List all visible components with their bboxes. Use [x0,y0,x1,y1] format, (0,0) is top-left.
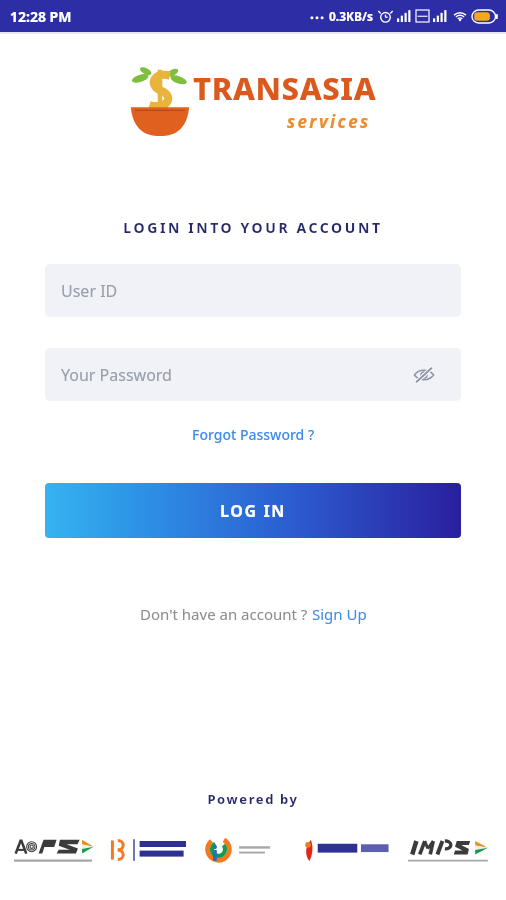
button[interactable]: Your Password [45,348,461,401]
staticText: Sign Up [312,604,367,624]
staticText: 12:28 PM [10,7,72,26]
button[interactable]: Show password [409,360,439,390]
staticText: Powered by [0,790,506,808]
staticText: LOGIN INTO YOUR ACCOUNT [0,218,506,237]
button[interactable]: Forgot Password ? [186,422,321,447]
staticText: TRANSASIA [193,67,377,109]
staticText: User ID [61,280,118,302]
staticText: Don't have an account ? [140,604,312,624]
button[interactable]: Sign Up [312,604,367,624]
staticText: services [287,110,371,133]
staticText: LOG IN [220,500,286,522]
staticText: Forgot Password ? [192,425,315,444]
staticText: 0.3KB/s [329,8,374,24]
button[interactable]: LOG IN [45,483,461,538]
staticText: Your Password [61,364,172,386]
button[interactable]: User ID [45,264,461,317]
